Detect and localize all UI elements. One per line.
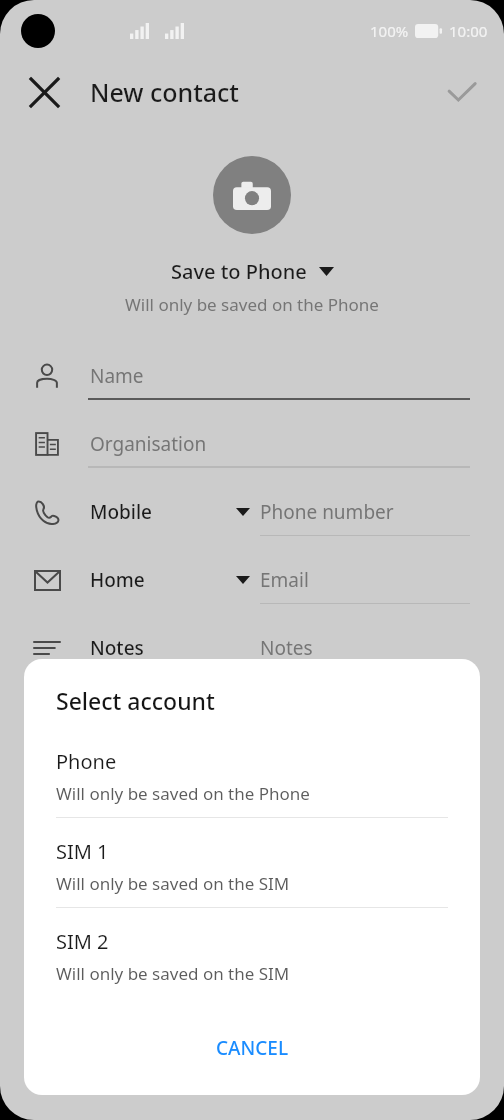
staticText: Home [90,567,145,593]
button[interactable]: SIM 2 [24,924,480,997]
button[interactable]: Notes [0,614,504,682]
button[interactable]: Save contact [436,66,488,118]
staticText: Will only be saved on the SIM [56,962,290,985]
button[interactable]: Organisation [0,410,504,478]
staticText: Email [260,567,309,593]
button[interactable]: Home [0,546,504,614]
button[interactable]: SIM 1 [24,834,480,907]
staticText: Mobile [90,499,152,525]
staticText: Notes [90,635,144,661]
staticText: Phone [56,748,117,775]
button[interactable]: Name [0,342,504,410]
staticText: Save to Phone [171,258,307,285]
staticText: Will only be saved on the Phone [125,293,379,316]
staticText: Organisation [90,431,207,457]
button[interactable]: Save to Phone [163,256,342,287]
staticText: SIM 1 [56,838,109,865]
staticText: New contact [90,75,239,109]
button[interactable]: Phone [24,744,480,817]
staticText: SIM 2 [56,928,109,955]
staticText: Phone number [260,499,394,525]
button[interactable]: Close [18,66,70,118]
staticText: Select account [56,685,215,716]
staticText: 100% [370,21,409,41]
staticText: CANCEL [216,1035,289,1061]
staticText: 10:00 [449,21,488,41]
button[interactable]: Add contact photo [213,156,291,234]
button[interactable]: CANCEL [24,1027,480,1069]
button[interactable]: Mobile [0,478,504,546]
staticText: Notes [260,635,313,661]
staticText: Will only be saved on the SIM [56,872,290,895]
staticText: Name [90,363,144,389]
staticText: Will only be saved on the Phone [56,782,310,805]
